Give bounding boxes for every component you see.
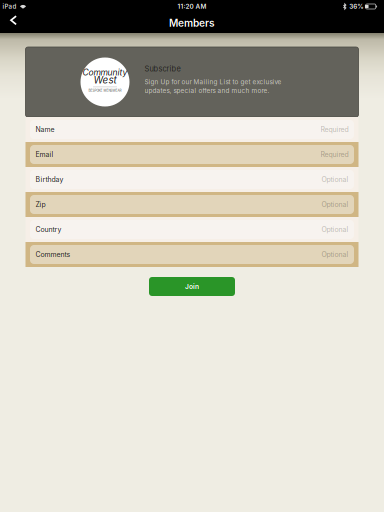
staticText: Optional	[321, 175, 348, 184]
staticText: Sign Up for our Mailing List to get excl…	[144, 78, 281, 86]
staticText: Join	[185, 282, 199, 291]
staticText: Optional	[321, 250, 348, 259]
staticText: Members	[169, 17, 215, 29]
staticText: Community	[82, 67, 127, 78]
button[interactable]: Zip	[25, 192, 358, 217]
staticText: Comments	[35, 250, 70, 259]
staticText: BESPOKE MENSWEAR	[88, 89, 121, 93]
staticText: Optional	[321, 225, 348, 234]
staticText: Required	[320, 125, 348, 134]
button[interactable]: Back	[0, 13, 30, 33]
staticText: Zip	[35, 200, 45, 209]
staticText: Email	[35, 150, 53, 159]
button[interactable]: Join	[149, 277, 235, 296]
staticText: Name	[35, 125, 54, 134]
staticText: Birthday	[35, 175, 63, 184]
button[interactable]: Birthday	[25, 167, 358, 192]
staticText: 36%	[349, 3, 363, 10]
button[interactable]: Comments	[25, 242, 358, 267]
staticText: Required	[320, 150, 348, 159]
staticText: iPad	[3, 3, 17, 10]
staticText: updates, special offers and much more.	[144, 87, 269, 94]
button[interactable]: Country	[25, 217, 358, 242]
button[interactable]: Email	[25, 142, 358, 167]
staticText: West	[93, 74, 116, 86]
staticText: Optional	[321, 200, 348, 209]
staticText: 11:20 AM	[177, 3, 206, 10]
staticText: Country	[35, 225, 61, 234]
button[interactable]: Name	[25, 117, 358, 142]
staticText: Subscribe	[144, 64, 180, 73]
